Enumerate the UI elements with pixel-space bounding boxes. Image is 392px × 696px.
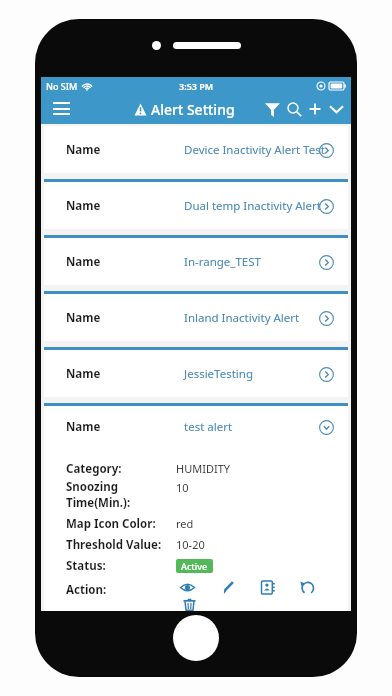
staticText: Map Icon Color: — [66, 516, 176, 532]
staticText: test alert — [184, 419, 233, 435]
staticText: Name — [66, 198, 101, 214]
staticText: Snoozing — [66, 479, 118, 495]
staticText: Dual temp Inactivity Alert — [184, 198, 321, 214]
button[interactable]: Search — [283, 98, 305, 120]
button[interactable]: Contacts — [256, 576, 278, 598]
button[interactable]: Delete — [178, 598, 200, 611]
staticText: Name — [66, 419, 101, 435]
button[interactable]: Expand Dual temp Inactivity Alert — [316, 196, 336, 216]
staticText: 3:53 PM — [179, 80, 214, 92]
staticText: Name — [66, 142, 101, 158]
staticText: Device Inactivity Alert Test — [184, 142, 325, 158]
staticText: No SIM — [46, 80, 78, 92]
button[interactable]: Name — [44, 291, 348, 341]
staticText: HUMIDITY — [176, 461, 230, 476]
button[interactable]: Expand In-range_TEST — [316, 252, 336, 272]
button[interactable]: View — [176, 576, 198, 598]
staticText: JessieTesting — [184, 366, 253, 382]
button[interactable]: Name — [44, 235, 348, 285]
staticText: Category: — [66, 461, 176, 477]
button[interactable]: Menu — [48, 96, 74, 122]
staticText: Name — [66, 310, 101, 326]
staticText: Name — [66, 366, 101, 382]
staticText: Time(Min.): — [66, 495, 131, 511]
staticText: 10 — [176, 480, 189, 495]
staticText: Alert Setting — [151, 100, 235, 119]
button[interactable]: Expand Inland Inactivity Alert — [316, 308, 336, 328]
staticText: Name — [66, 254, 101, 270]
staticText: Inland Inactivity Alert — [184, 310, 300, 326]
button[interactable]: Expand JessieTesting — [316, 364, 336, 384]
staticText: Status: — [66, 558, 176, 574]
button[interactable]: Name — [44, 179, 348, 229]
staticText: red — [176, 516, 194, 531]
staticText: Active — [181, 560, 208, 572]
button[interactable]: Name — [44, 126, 348, 173]
staticText: Action: — [66, 582, 176, 598]
button[interactable]: Name — [44, 406, 348, 448]
button[interactable]: Filter — [261, 98, 283, 120]
button[interactable]: Name — [44, 347, 348, 397]
button[interactable]: Collapse test alert — [316, 417, 336, 437]
staticText: 10-20 — [176, 537, 205, 552]
button[interactable]: Expand Device Inactivity Alert Test — [316, 140, 336, 160]
staticText: Threshold Value: — [66, 537, 176, 553]
staticText: In-range_TEST — [184, 254, 261, 270]
button[interactable]: Edit — [216, 576, 238, 598]
button[interactable]: History — [296, 576, 318, 598]
button[interactable]: Add — [305, 99, 325, 119]
button[interactable]: More options — [325, 98, 347, 120]
